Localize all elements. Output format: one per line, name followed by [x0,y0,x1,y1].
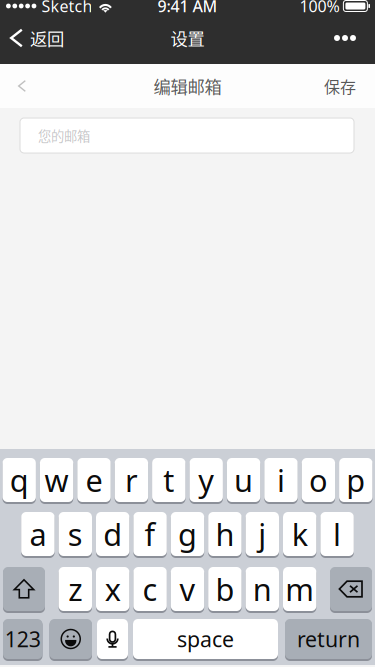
staticText: s [68,514,83,554]
staticText: u [234,460,253,500]
button[interactable]: m [283,567,316,613]
staticText: 您的邮箱 [38,126,90,145]
button[interactable]: 保存 [305,64,375,108]
button[interactable]: b [208,567,242,613]
staticText: 编辑邮箱 [153,73,221,99]
button[interactable]: More options [318,16,375,60]
button[interactable]: e [77,458,111,504]
staticText: o [309,460,328,500]
button[interactable]: t [152,458,185,504]
button[interactable]: h [208,512,242,558]
button[interactable]: z [59,567,92,613]
button[interactable]: Shift [3,567,45,613]
button[interactable]: Emoji [49,619,92,661]
button[interactable]: Dictation [97,619,128,661]
staticText: 9:41 AM [157,0,217,17]
staticText: Sketch [41,0,92,17]
staticText: d [103,514,122,554]
staticText: b [215,569,234,609]
button[interactable]: Back [0,64,44,108]
staticText: t [163,460,174,500]
button[interactable]: u [227,458,260,504]
staticText: z [68,569,82,609]
staticText: p [346,460,365,500]
staticText: e [85,460,102,500]
staticText: f [145,514,156,554]
staticText: j [258,514,266,554]
button[interactable]: c [133,567,167,613]
staticText: r [125,460,138,500]
button[interactable]: 返回 [0,16,76,60]
staticText: 设置 [170,25,204,51]
staticText: return [297,625,360,653]
button[interactable]: return [285,619,372,661]
staticText: v [179,569,195,609]
staticText: i [277,460,285,500]
button[interactable]: s [59,512,92,558]
staticText: 123 [5,625,41,653]
button[interactable]: n [246,567,279,613]
button[interactable]: r [115,458,148,504]
staticText: k [292,514,308,554]
staticText: 保存 [324,74,356,98]
staticText: 100% [299,0,339,17]
button[interactable]: v [171,567,204,613]
button[interactable]: 123 [3,619,42,661]
button[interactable]: x [96,567,129,613]
button[interactable]: k [283,512,316,558]
staticText: n [253,569,272,609]
staticText: y [198,460,214,500]
button[interactable]: space [133,619,278,661]
button[interactable]: Delete [330,567,372,613]
button[interactable]: 您的邮箱 [20,118,354,153]
button[interactable]: l [320,512,354,558]
button[interactable]: o [302,458,335,504]
staticText: a [29,514,46,554]
staticText: q [10,460,29,500]
staticText: l [333,514,341,554]
button[interactable]: p [339,458,372,504]
staticText: 返回 [30,25,64,51]
staticText: c [143,569,158,609]
staticText: x [105,569,121,609]
staticText: m [285,569,314,609]
button[interactable]: g [171,512,204,558]
button[interactable]: d [96,512,129,558]
button[interactable]: i [264,458,298,504]
button[interactable]: f [133,512,167,558]
button[interactable]: a [21,512,55,558]
button[interactable]: w [40,458,73,504]
button[interactable]: y [189,458,223,504]
staticText: w [45,460,69,500]
staticText: g [178,514,197,554]
button[interactable]: j [246,512,279,558]
button[interactable]: q [2,458,36,504]
staticText: h [215,514,234,554]
staticText: space [177,625,234,653]
